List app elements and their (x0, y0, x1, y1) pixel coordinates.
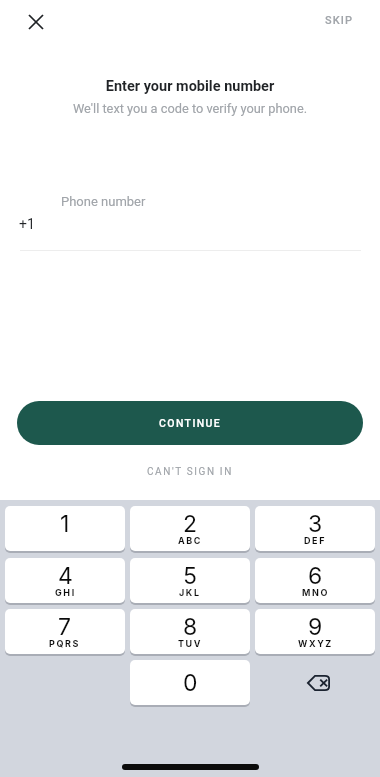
staticText: 2 (183, 510, 198, 538)
staticText: We'll text you a code to verify your pho… (0, 101, 380, 116)
button[interactable]: 1 (5, 506, 125, 551)
staticText: GHI (55, 587, 76, 598)
button[interactable]: 8 (130, 609, 250, 654)
button[interactable]: CAN'T SIGN IN (137, 459, 243, 485)
button[interactable]: 0 (130, 660, 250, 705)
button[interactable]: CONTINUE (17, 401, 363, 445)
button[interactable]: 9 (255, 609, 375, 654)
staticText: 4 (58, 562, 73, 590)
staticText: 5 (183, 562, 197, 590)
button[interactable]: 7 (5, 609, 125, 654)
button[interactable]: SKIP (317, 8, 362, 33)
staticText: Phone number (61, 194, 146, 209)
staticText: DEF (304, 535, 327, 546)
staticText: Enter your mobile number (0, 78, 380, 95)
button[interactable]: 2 (130, 506, 250, 551)
staticText: JKL (179, 587, 201, 598)
button[interactable]: 5 (130, 558, 250, 603)
staticText: 6 (308, 562, 323, 590)
staticText: MNO (302, 587, 329, 598)
staticText: 1 (60, 510, 70, 538)
staticText: 9 (308, 613, 323, 641)
staticText: 3 (308, 510, 323, 538)
staticText: CAN'T SIGN IN (147, 466, 233, 478)
staticText: 8 (183, 613, 198, 641)
button[interactable]: 3 (255, 506, 375, 551)
button[interactable]: Close (20, 6, 52, 38)
staticText: +1 (19, 216, 35, 232)
button[interactable]: 6 (255, 558, 375, 603)
staticText: ABC (178, 535, 203, 546)
staticText: CONTINUE (159, 417, 222, 429)
staticText: SKIP (325, 14, 354, 27)
button[interactable]: Backspace (255, 660, 375, 705)
staticText: 7 (58, 613, 72, 641)
staticText: WXYZ (298, 638, 333, 649)
staticText: TUV (178, 638, 203, 649)
button[interactable]: 4 (5, 558, 125, 603)
staticText: PQRS (49, 638, 81, 649)
staticText: 0 (183, 669, 198, 697)
